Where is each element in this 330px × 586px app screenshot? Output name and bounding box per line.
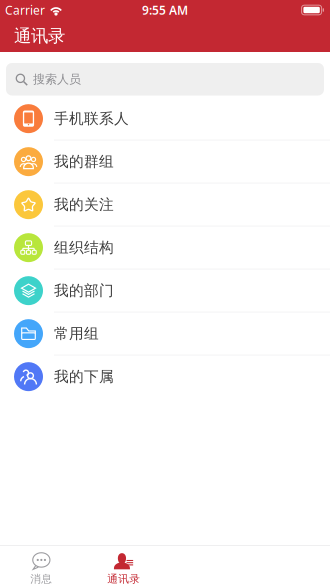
staticText: 我的群组 — [54, 153, 114, 171]
button[interactable]: 我的部门 — [0, 269, 330, 312]
staticText: 9:55 AM — [142, 2, 188, 18]
staticText: 消息 — [30, 572, 52, 585]
staticText: 搜索人员 — [33, 72, 81, 87]
staticText: 通讯录 — [107, 572, 140, 585]
staticText: 我的部门 — [54, 282, 114, 300]
button[interactable]: 我的关注 — [0, 183, 330, 226]
staticText: 我的下属 — [54, 368, 114, 386]
staticText: 我的关注 — [54, 196, 114, 214]
button[interactable]: 我的群组 — [0, 140, 330, 183]
button[interactable]: 组织结构 — [0, 226, 330, 269]
staticText: 手机联系人 — [54, 110, 129, 128]
button[interactable]: 手机联系人 — [0, 97, 330, 140]
button[interactable]: 通讯录 — [82, 542, 165, 586]
staticText: 组织结构 — [54, 239, 114, 257]
button[interactable]: 常用组 — [0, 312, 330, 355]
button[interactable]: 我的下属 — [0, 355, 330, 398]
staticText: Carrier — [5, 2, 45, 18]
staticText: 常用组 — [54, 325, 99, 343]
button[interactable]: 消息 — [0, 542, 82, 586]
staticText: 通讯录 — [14, 25, 65, 47]
